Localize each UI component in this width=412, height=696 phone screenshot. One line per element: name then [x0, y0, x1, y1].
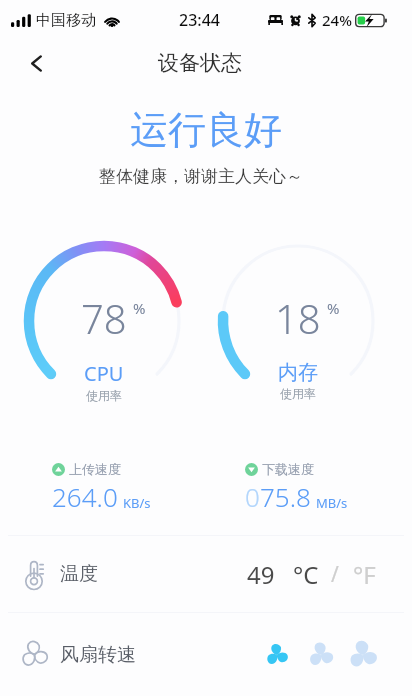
staticText: 18 [275, 291, 321, 345]
button[interactable]: Fan speed high [348, 640, 378, 670]
staticText: 24% [322, 10, 352, 30]
staticText: °C [293, 558, 319, 591]
staticText: % [327, 298, 340, 318]
button[interactable]: 上传速度 [52, 461, 151, 514]
staticText: 温度 [60, 562, 98, 586]
staticText: °F [353, 558, 376, 591]
staticText: % [133, 298, 146, 318]
button[interactable]: 18 [208, 231, 388, 411]
staticText: 运行良好 [0, 106, 412, 154]
staticText: 内存 [278, 360, 318, 385]
button[interactable]: 78 [14, 231, 194, 411]
staticText: / [331, 560, 339, 589]
staticText: 264.0 [52, 479, 118, 514]
button[interactable]: 温度 [0, 536, 412, 612]
staticText: 下载速度 [262, 461, 314, 477]
staticText: 使用率 [86, 388, 122, 403]
staticText: KB/s [123, 494, 151, 512]
button[interactable]: Fan speed medium [306, 640, 336, 670]
staticText: 中国移动 [36, 11, 96, 30]
staticText: 75.8 [260, 479, 311, 514]
staticText: 风扇转速 [60, 643, 136, 667]
staticText: 设备状态 [158, 50, 242, 76]
staticText: 整体健康，谢谢主人关心～ [0, 166, 407, 187]
staticText: CPU [84, 360, 124, 387]
staticText: 使用率 [280, 386, 316, 401]
staticText: 0 [245, 479, 260, 514]
staticText: 49 [247, 558, 275, 591]
staticText: 23:44 [179, 9, 220, 31]
button[interactable]: Fan speed low [262, 640, 292, 670]
staticText: 上传速度 [69, 461, 121, 477]
button[interactable]: 下载速度 [245, 461, 348, 514]
staticText: MB/s [316, 494, 348, 512]
staticText: 78 [81, 291, 127, 345]
button[interactable]: Back [14, 41, 58, 85]
